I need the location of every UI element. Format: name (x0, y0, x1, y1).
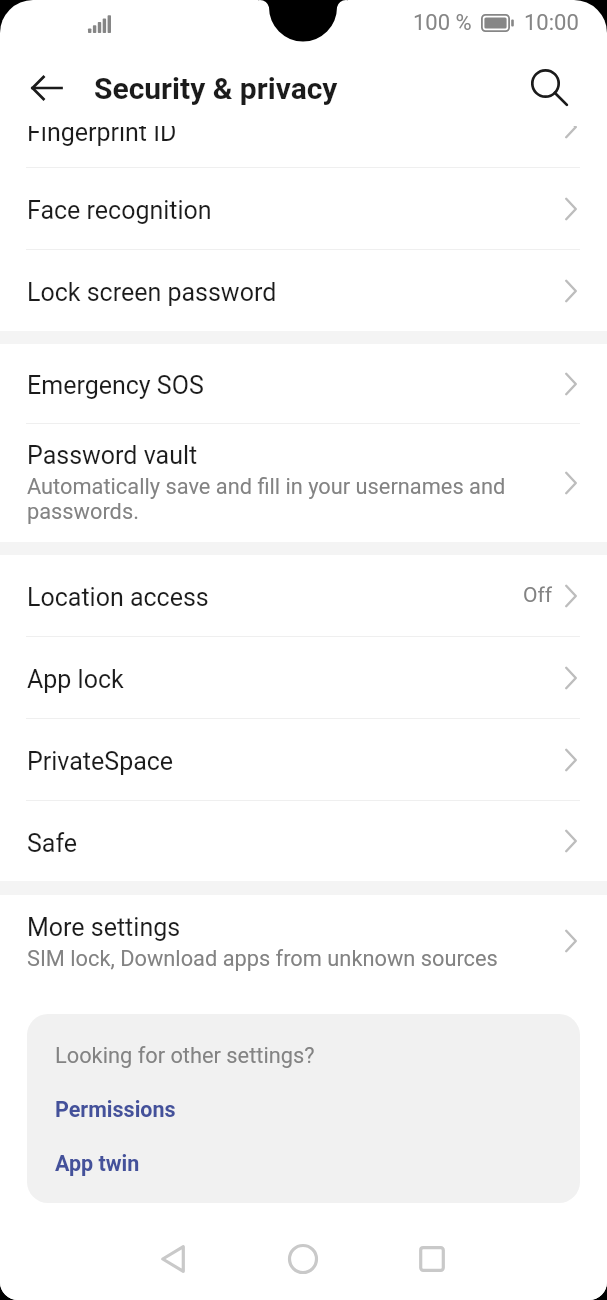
staticText: More settings (27, 913, 181, 942)
staticText: Permissions (55, 1097, 176, 1122)
button[interactable]: App lock (0, 637, 607, 718)
staticText: Lock screen password (27, 278, 277, 307)
button[interactable]: Search (520, 59, 578, 117)
button[interactable]: Home (268, 1224, 338, 1294)
button[interactable]: Back (138, 1224, 208, 1294)
button[interactable]: App twin (55, 1151, 140, 1176)
staticText: App lock (27, 665, 124, 694)
button[interactable]: Password vault (0, 424, 607, 542)
button[interactable]: Face recognition (0, 168, 607, 249)
staticText: Emergency SOS (27, 371, 204, 400)
staticText: App twin (55, 1151, 140, 1176)
button[interactable]: Fingerprint ID (0, 126, 607, 167)
button[interactable]: PrivateSpace (0, 719, 607, 800)
staticText: Safe (27, 829, 78, 858)
button[interactable]: Permissions (55, 1097, 176, 1122)
staticText: Face recognition (27, 196, 212, 225)
staticText: Off (523, 583, 553, 608)
staticText: Looking for other settings? (55, 1043, 315, 1069)
button[interactable]: More settings (0, 895, 607, 987)
button[interactable]: Back (18, 59, 76, 117)
button[interactable]: Recents (397, 1224, 467, 1294)
staticText: Automatically save and fill in your user… (27, 474, 517, 524)
button[interactable]: Safe (0, 801, 607, 881)
staticText: 100 % (413, 10, 472, 36)
button[interactable]: Emergency SOS (0, 344, 607, 423)
staticText: Security & privacy (94, 71, 338, 106)
button[interactable]: Location access (0, 555, 607, 636)
staticText: 10:00 (524, 10, 579, 36)
button[interactable]: Lock screen password (0, 250, 607, 331)
staticText: Password vault (27, 441, 198, 470)
staticText: PrivateSpace (27, 747, 174, 776)
staticText: Fingerprint ID (27, 126, 177, 147)
staticText: SIM lock, Download apps from unknown sou… (27, 946, 517, 972)
staticText: Location access (27, 583, 209, 612)
